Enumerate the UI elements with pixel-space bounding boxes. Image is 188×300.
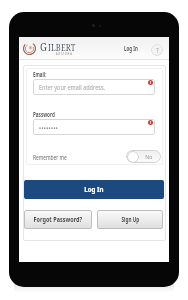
button[interactable]: Enter your email address. [33,79,155,95]
staticText: ILBERT [48,42,76,53]
staticText: Enter your email address. [39,83,106,91]
button[interactable]: Sign Up [97,210,163,229]
button[interactable]: Forgot Password? [24,210,92,229]
staticText: No [145,153,153,161]
other: Error [148,80,153,85]
staticText: Log In [124,44,138,53]
staticText: Log In [84,185,104,195]
staticText: Email: [33,70,47,78]
other: Error [148,120,153,125]
staticText: Forgot Password? [33,215,82,225]
staticText: ! [150,80,152,85]
button[interactable]: Log In [121,40,141,56]
button[interactable]: Log In [24,180,164,199]
staticText: •••••••• [39,124,59,131]
button[interactable]: Remember me off [126,150,161,163]
staticText: Password [33,110,55,118]
staticText: ! [150,120,152,125]
button[interactable]: •••••••• [33,119,155,135]
staticText: Remember me [33,153,67,161]
staticText: Sign Up [121,215,140,225]
button[interactable]: Help [151,44,163,56]
staticText: ? [156,46,159,55]
staticText: ARIZONA [56,52,73,56]
staticText: G [40,40,47,54]
